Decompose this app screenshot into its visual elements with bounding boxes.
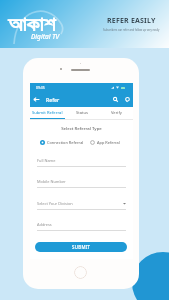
staticText: REFER EASILY xyxy=(107,16,156,26)
button[interactable]: Connection Referral xyxy=(40,140,84,145)
staticText: Address xyxy=(37,222,52,227)
staticText: Connection Referral xyxy=(47,140,84,145)
button[interactable]: SUBMIT xyxy=(35,242,127,252)
staticText: Select Your Division xyxy=(37,201,73,206)
staticText: 09:35 xyxy=(36,85,45,90)
button[interactable]: Status xyxy=(65,107,99,119)
button[interactable]: App Referral xyxy=(90,140,126,145)
staticText: Mobile Number xyxy=(37,179,66,184)
button[interactable]: Notifications xyxy=(123,95,132,104)
staticText: Verify xyxy=(111,110,122,116)
button[interactable]: Submit Referral xyxy=(30,107,65,119)
staticText: SUBMIT xyxy=(72,244,91,250)
staticText: Status xyxy=(76,110,88,116)
staticText: আকাশ xyxy=(8,15,56,35)
staticText: Submit Referral xyxy=(32,110,63,116)
button[interactable]: Verify xyxy=(99,107,133,119)
staticText: Full Name xyxy=(37,158,56,163)
staticText: App Referral xyxy=(97,140,120,145)
staticText: Select Referral Type xyxy=(30,125,133,131)
staticText: Subscribers can refer and follow up very… xyxy=(103,28,160,32)
staticText: Digital TV xyxy=(31,32,60,41)
staticText: Refer xyxy=(46,96,60,103)
button[interactable]: Back xyxy=(31,94,42,105)
button[interactable]: Search xyxy=(111,95,120,104)
